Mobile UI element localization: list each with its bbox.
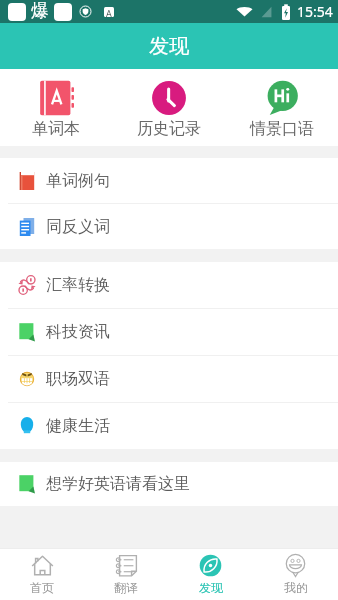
button[interactable]: 健康生活	[0, 403, 338, 449]
staticText: 科技资讯	[46, 322, 110, 342]
staticText: 健康生活	[46, 416, 110, 436]
button[interactable]: 历史记录	[112, 76, 225, 139]
staticText: 历史记录	[137, 119, 201, 139]
staticText: 发现	[199, 580, 223, 595]
button[interactable]: 发现	[168, 554, 253, 595]
staticText: 爆	[31, 0, 49, 23]
button[interactable]: 同反义词	[0, 204, 338, 249]
staticText: 首页	[30, 580, 54, 595]
button[interactable]: 职场双语	[0, 356, 338, 402]
button[interactable]: 科技资讯	[0, 309, 338, 355]
staticText: 汇率转换	[46, 275, 110, 295]
other: 情景口语	[264, 80, 300, 116]
button[interactable]: 想学好英语请看这里	[0, 462, 338, 506]
button[interactable]: 汇率转换	[0, 262, 338, 308]
staticText: 发现	[149, 34, 189, 59]
button[interactable]: 翻译	[84, 554, 168, 595]
staticText: 15:54	[297, 2, 333, 21]
button[interactable]: 单词例句	[0, 158, 338, 203]
other: 单词本	[38, 80, 74, 116]
staticText: 单词本	[32, 119, 80, 139]
staticText: 想学好英语请看这里	[46, 474, 190, 494]
other: 历史记录	[151, 80, 187, 116]
staticText: 情景口语	[250, 119, 314, 139]
staticText: A	[106, 7, 112, 17]
button[interactable]: 情景口语	[225, 76, 338, 139]
staticText: 单词例句	[46, 171, 110, 191]
button[interactable]: 我的	[253, 554, 338, 595]
staticText: 翻译	[114, 580, 138, 595]
button[interactable]: 单词本	[0, 76, 112, 139]
staticText: 同反义词	[46, 217, 110, 237]
staticText: 职场双语	[46, 369, 110, 389]
button[interactable]: 首页	[0, 554, 84, 595]
staticText: 我的	[284, 580, 308, 595]
